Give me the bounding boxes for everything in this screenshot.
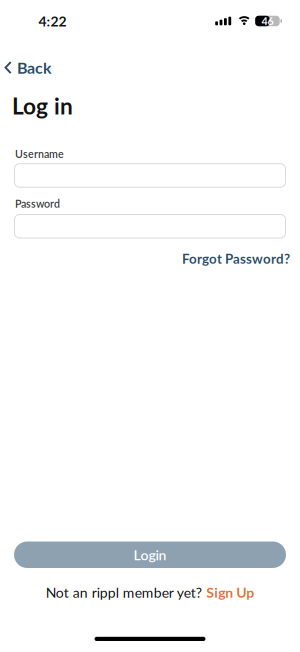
staticText: 46 xyxy=(261,15,273,27)
staticText: 4:22 xyxy=(38,13,66,29)
button[interactable]: Password xyxy=(0,214,300,238)
staticText: Password xyxy=(15,197,60,210)
button[interactable]: Username xyxy=(0,163,300,188)
staticText: Log in xyxy=(12,92,73,119)
staticText: Not an rippl member yet? xyxy=(46,584,202,601)
staticText: Username xyxy=(15,147,64,160)
staticText: Sign Up xyxy=(206,584,254,601)
button[interactable]: Login xyxy=(0,541,300,568)
staticText: Login xyxy=(133,546,166,563)
staticText: Forgot Password? xyxy=(182,250,290,266)
button[interactable]: Forgot Password? xyxy=(182,250,290,266)
staticText: Back xyxy=(17,58,52,77)
button[interactable]: Sign Up xyxy=(206,584,254,601)
button[interactable]: Back xyxy=(4,58,52,77)
